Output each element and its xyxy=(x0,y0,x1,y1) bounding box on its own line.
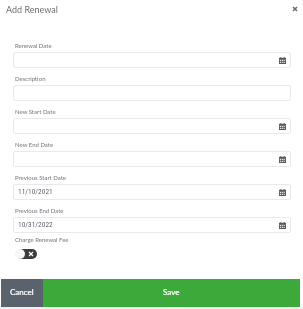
staticText: New End Date xyxy=(15,141,54,148)
button[interactable]: Save xyxy=(43,279,300,307)
other: Open calendar for New Start Date xyxy=(279,123,286,130)
button[interactable]: Open calendar for New End Date xyxy=(13,151,291,167)
staticText: 10/31/2022 xyxy=(18,220,53,229)
staticText: Previous Start Date xyxy=(15,174,66,181)
button[interactable]: 10/31/2022 xyxy=(13,217,291,233)
staticText: Previous End Date xyxy=(15,207,64,214)
staticText: Add Renewal xyxy=(6,4,58,15)
staticText: New Start Date xyxy=(15,108,56,115)
staticText: Charge Renewal Fee xyxy=(15,236,69,243)
other: Open calendar for Renewal Date xyxy=(279,57,286,64)
button[interactable] xyxy=(13,85,291,101)
staticText: 11/10/2021 xyxy=(18,187,53,196)
other: Open calendar for New End Date xyxy=(279,156,286,163)
button[interactable]: Open calendar for New Start Date xyxy=(13,118,291,134)
button[interactable]: Cancel xyxy=(1,279,43,307)
button[interactable]: Open calendar for Renewal Date xyxy=(13,52,291,68)
other: Open calendar for Previous End Date xyxy=(279,222,286,229)
button[interactable]: Close xyxy=(288,2,302,16)
button[interactable]: Charge Renewal Fee, off xyxy=(16,249,37,259)
button[interactable]: 11/10/2021 xyxy=(13,184,291,200)
staticText: Save xyxy=(163,287,180,297)
other: Open calendar for Previous Start Date xyxy=(279,189,286,196)
staticText: Renewal Date xyxy=(15,42,52,49)
staticText: Cancel xyxy=(10,287,34,297)
staticText: Description xyxy=(15,75,46,82)
